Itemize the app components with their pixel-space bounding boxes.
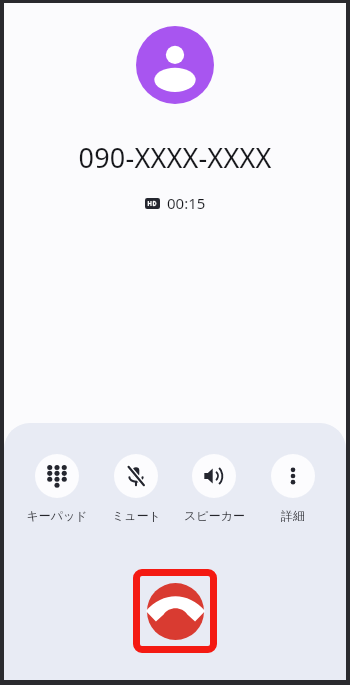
button[interactable]: More options: [258, 454, 328, 523]
button[interactable]: End call: [133, 569, 217, 653]
staticText: キーパッド: [26, 508, 88, 523]
staticText: 00:15: [167, 193, 206, 213]
button[interactable]: Mute: [101, 454, 171, 523]
button[interactable]: Speaker: [179, 454, 249, 523]
staticText: ミュート: [112, 508, 161, 523]
staticText: 詳細: [281, 508, 305, 523]
staticText: スピーカー: [184, 508, 245, 523]
button[interactable]: Keypad: [22, 454, 92, 523]
staticText: 090-XXXX-XXXX: [4, 139, 346, 176]
